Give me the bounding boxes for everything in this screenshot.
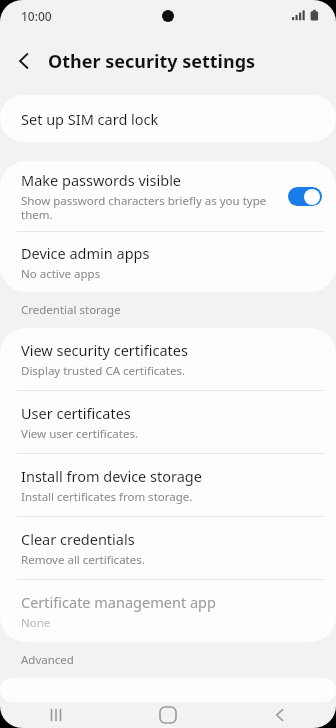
button[interactable]: User certificates: [0, 391, 336, 453]
button[interactable]: Back: [224, 702, 336, 728]
staticText: Certificate management app: [21, 592, 216, 612]
staticText: View security certificates: [21, 340, 188, 360]
button[interactable]: Make passwords visible toggle: [288, 187, 322, 206]
staticText: Device admin apps: [21, 243, 150, 263]
button[interactable]: View security certificates: [0, 328, 336, 390]
staticText: Clear credentials: [21, 529, 135, 549]
staticText: Install from device storage: [21, 466, 202, 486]
staticText: Advanced: [21, 652, 74, 668]
staticText: None: [21, 615, 51, 631]
button[interactable]: Set up SIM card lock: [0, 95, 336, 142]
staticText: No active apps: [21, 266, 101, 282]
button[interactable]: Clear credentials: [0, 517, 336, 579]
button[interactable]: Make passwords visible: [0, 161, 336, 231]
staticText: Install certificates from storage.: [21, 489, 193, 505]
staticText: 10:00: [21, 8, 52, 24]
staticText: Credential storage: [21, 302, 121, 318]
staticText: Show password characters briefly as you …: [21, 193, 280, 223]
staticText: Remove all certificates.: [21, 552, 145, 568]
staticText: Display trusted CA certificates.: [21, 363, 186, 379]
staticText: Make passwords visible: [21, 170, 182, 190]
button[interactable]: Back: [0, 37, 48, 85]
button[interactable]: Device admin apps: [0, 232, 336, 292]
button[interactable]: Install from device storage: [0, 454, 336, 516]
staticText: Set up SIM card lock: [21, 109, 159, 129]
staticText: User certificates: [21, 403, 131, 423]
button[interactable]: Recent apps: [0, 702, 112, 728]
button[interactable]: Home: [112, 702, 224, 728]
staticText: Other security settings: [48, 49, 256, 74]
staticText: View user certificates.: [21, 426, 138, 442]
